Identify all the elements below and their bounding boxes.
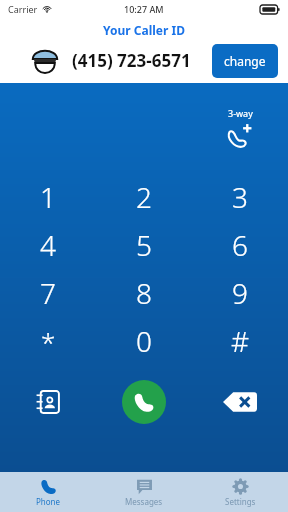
staticText: 9 bbox=[232, 274, 248, 312]
button[interactable]: Delete bbox=[192, 371, 288, 433]
button[interactable]: 1 bbox=[0, 173, 96, 221]
staticText: 3-way bbox=[228, 107, 253, 119]
staticText: * bbox=[41, 324, 56, 359]
button[interactable]: 8 bbox=[96, 269, 192, 317]
button[interactable]: Messages bbox=[96, 472, 192, 512]
staticText: Messages bbox=[125, 496, 163, 507]
staticText: change bbox=[224, 53, 266, 69]
button[interactable]: 9 bbox=[192, 269, 288, 317]
staticText: Carrier bbox=[8, 3, 38, 15]
button[interactable]: Contacts bbox=[0, 371, 96, 433]
staticText: Settings bbox=[225, 496, 256, 507]
staticText: 1 bbox=[40, 178, 56, 216]
staticText: 5 bbox=[136, 226, 152, 264]
staticText: 4 bbox=[40, 226, 56, 264]
button[interactable]: 0 bbox=[96, 317, 192, 365]
staticText: 3 bbox=[232, 178, 248, 216]
button[interactable]: change bbox=[212, 44, 278, 78]
button[interactable]: # bbox=[192, 317, 288, 365]
staticText: (415) 723-6571 bbox=[72, 49, 212, 72]
button[interactable]: Caller ID avatar bbox=[28, 44, 62, 78]
button[interactable]: Phone bbox=[0, 472, 96, 512]
staticText: # bbox=[231, 322, 250, 360]
staticText: 6 bbox=[232, 226, 248, 264]
button[interactable]: * bbox=[0, 317, 96, 365]
button[interactable]: 6 bbox=[192, 221, 288, 269]
button[interactable]: 3 bbox=[192, 173, 288, 221]
staticText: 2 bbox=[136, 178, 152, 216]
button[interactable]: Settings bbox=[192, 472, 288, 512]
button[interactable]: 2 bbox=[96, 173, 192, 221]
staticText: Phone bbox=[36, 496, 61, 507]
staticText: 8 bbox=[136, 274, 152, 312]
staticText: 7 bbox=[40, 274, 56, 312]
staticText: 0 bbox=[136, 322, 152, 360]
button[interactable]: 5 bbox=[96, 221, 192, 269]
button[interactable]: 3-way call bbox=[192, 107, 288, 149]
staticText: 10:27 AM bbox=[124, 3, 164, 15]
button[interactable]: 7 bbox=[0, 269, 96, 317]
staticText: Your Caller ID bbox=[0, 22, 288, 38]
button[interactable]: Call bbox=[122, 380, 166, 424]
button[interactable]: 4 bbox=[0, 221, 96, 269]
